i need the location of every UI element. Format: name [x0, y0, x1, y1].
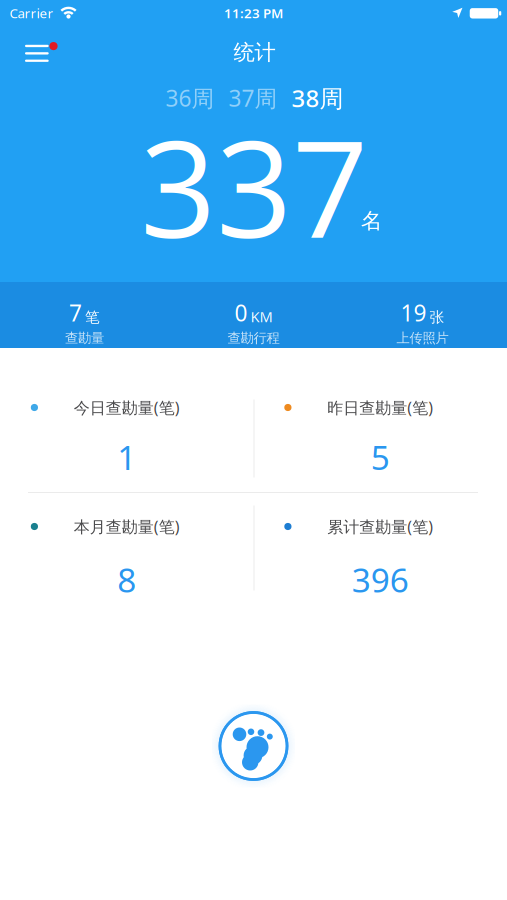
- staticText: 7: [69, 298, 82, 328]
- staticText: 36周: [165, 83, 214, 113]
- staticText: 本月查勘量(笔): [74, 516, 180, 537]
- staticText: 5: [371, 435, 390, 479]
- button[interactable]: 36周: [165, 83, 214, 113]
- staticText: 396: [352, 557, 409, 602]
- staticText: 8: [117, 557, 136, 602]
- staticText: 查勘行程: [227, 330, 279, 346]
- staticText: 名: [361, 208, 382, 234]
- staticText: 张: [429, 308, 444, 326]
- button[interactable]: 37周: [228, 83, 277, 113]
- staticText: 0: [234, 298, 247, 328]
- staticText: 查勘量: [65, 330, 104, 346]
- button[interactable]: 38周: [291, 82, 343, 114]
- staticText: 337: [140, 95, 368, 277]
- staticText: 统计: [233, 39, 275, 66]
- staticText: 今日查勘量(笔): [74, 397, 180, 418]
- staticText: 38周: [291, 82, 343, 114]
- button[interactable]: 查勘足迹: [211, 704, 295, 788]
- staticText: 笔: [85, 308, 100, 326]
- staticText: 11:23 PM: [224, 4, 283, 22]
- button[interactable]: Menu: [25, 43, 58, 63]
- staticText: 累计查勘量(笔): [327, 516, 433, 537]
- staticText: 37周: [228, 83, 277, 113]
- staticText: 19: [400, 298, 426, 328]
- staticText: 1: [117, 435, 136, 479]
- staticText: 上传照片: [396, 330, 448, 346]
- staticText: Carrier: [9, 4, 53, 22]
- staticText: 昨日查勘量(笔): [327, 397, 433, 418]
- staticText: KM: [250, 307, 272, 326]
